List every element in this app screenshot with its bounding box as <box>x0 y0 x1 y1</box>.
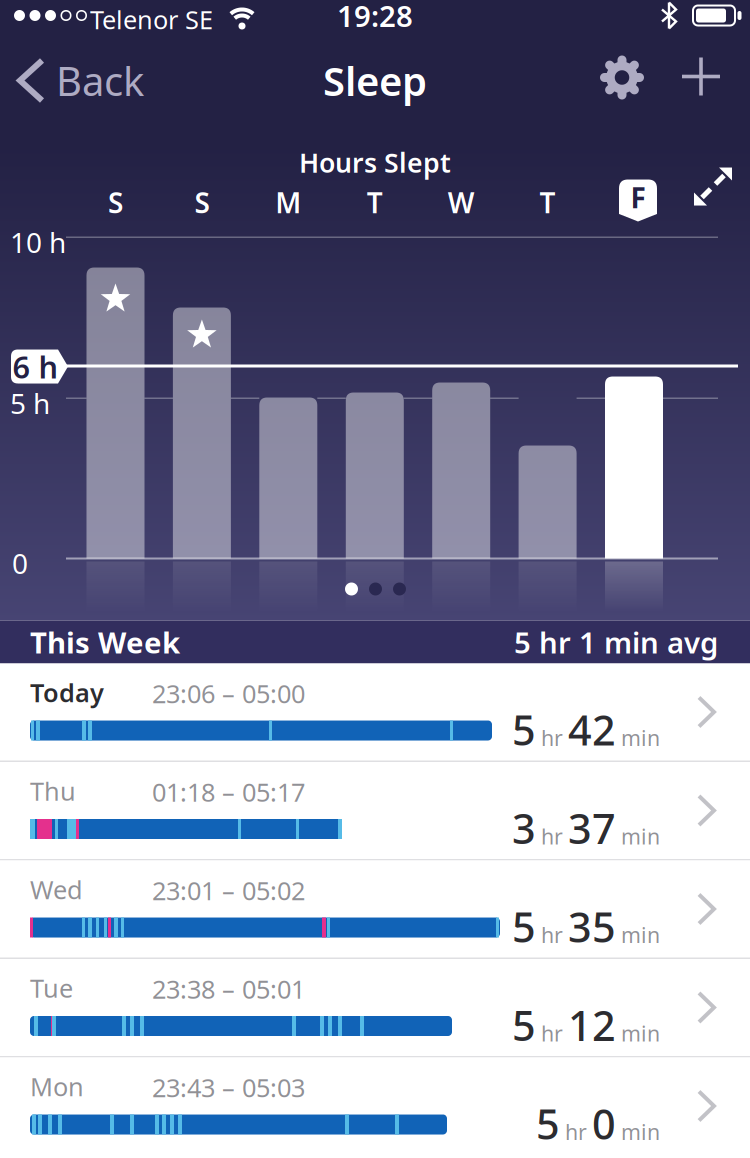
staticText: Mon <box>30 1069 84 1103</box>
staticText: 23:06 – 05:00 <box>152 676 305 710</box>
staticText: 5 h <box>10 384 50 422</box>
staticText: Telenor SE <box>90 2 213 36</box>
button[interactable]: Mon <box>0 1057 750 1154</box>
button[interactable] <box>682 57 720 95</box>
staticText: T <box>540 184 556 221</box>
staticText: 0 <box>12 544 28 582</box>
staticText: min <box>621 822 660 850</box>
staticText: F <box>630 179 645 216</box>
button[interactable] <box>694 167 732 205</box>
staticText: This Week <box>30 622 180 661</box>
staticText: 23:01 – 05:02 <box>152 873 305 907</box>
staticText: S <box>194 184 209 221</box>
staticText: Wed <box>30 872 83 906</box>
staticText: 35 <box>568 899 616 954</box>
staticText: min <box>621 1118 660 1146</box>
staticText: W <box>448 184 475 221</box>
staticText: 5 hr 1 min avg <box>514 622 718 661</box>
staticText: min <box>621 921 660 949</box>
staticText: hr <box>541 822 563 850</box>
button[interactable] <box>600 55 644 99</box>
staticText: Sleep <box>323 54 427 107</box>
staticText: Hours Slept <box>299 145 451 180</box>
staticText: 23:43 – 05:03 <box>152 1070 305 1104</box>
staticText: 23:38 – 05:01 <box>152 972 305 1006</box>
button[interactable]: Thu <box>0 762 750 859</box>
staticText: min <box>621 1019 660 1047</box>
staticText: 5 <box>536 1096 560 1151</box>
staticText: hr <box>565 1118 587 1146</box>
staticText: Thu <box>30 774 76 808</box>
button[interactable]: Today <box>0 663 750 760</box>
staticText: Today <box>30 675 104 709</box>
staticText: hr <box>541 921 563 949</box>
staticText: Back <box>56 54 144 107</box>
staticText: 5 <box>512 998 536 1052</box>
staticText: S <box>108 184 123 221</box>
staticText: hr <box>541 1019 563 1047</box>
button[interactable]: Back <box>20 52 144 108</box>
button[interactable]: Tue <box>0 959 750 1056</box>
staticText: 6 h <box>12 346 58 387</box>
staticText: 5 <box>512 899 536 954</box>
staticText: 0 <box>592 1096 616 1151</box>
staticText: Tue <box>30 971 73 1005</box>
staticText: 10 h <box>10 223 66 261</box>
staticText: 19:28 <box>337 0 413 35</box>
staticText: T <box>367 184 383 221</box>
staticText: 01:18 – 05:17 <box>152 775 305 809</box>
staticText: 3 <box>512 801 536 855</box>
staticText: 37 <box>568 801 616 855</box>
staticText: 42 <box>568 702 616 757</box>
staticText: 5 <box>512 702 536 757</box>
staticText: hr <box>541 724 563 752</box>
button[interactable]: Wed <box>0 860 750 957</box>
staticText: min <box>621 724 660 752</box>
staticText: 12 <box>568 998 616 1052</box>
staticText: M <box>275 184 301 221</box>
